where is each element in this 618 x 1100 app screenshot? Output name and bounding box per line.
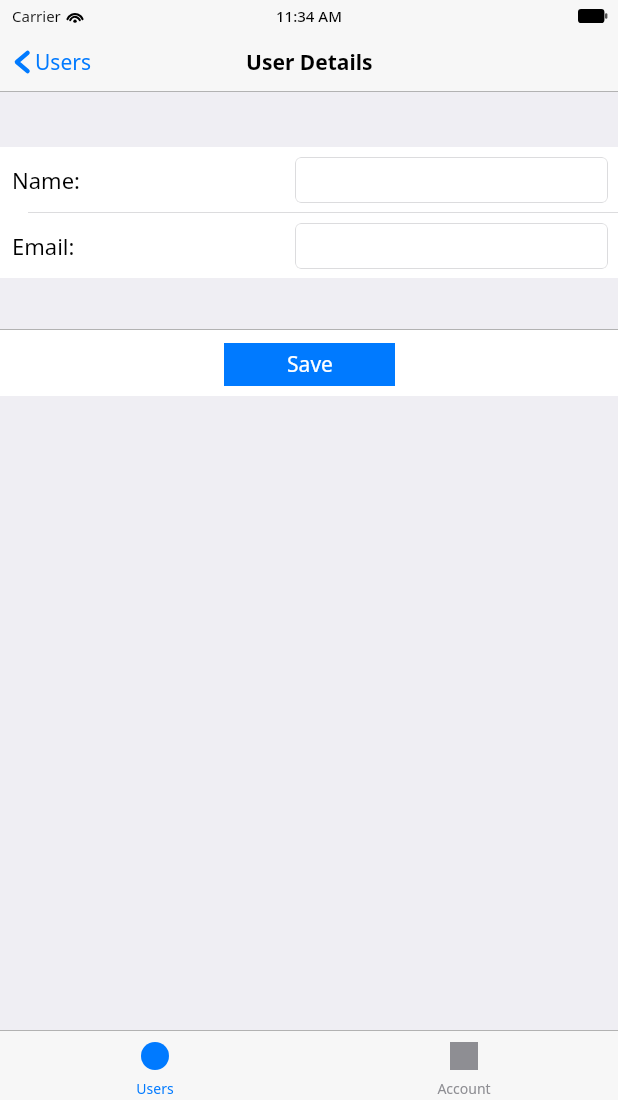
- staticText: Account: [437, 1079, 491, 1098]
- staticText: Users: [35, 48, 91, 77]
- staticText: User Details: [246, 48, 373, 77]
- button[interactable]: Users: [0, 32, 101, 92]
- button[interactable]: Account: [309, 1030, 618, 1100]
- staticText: Name:: [12, 165, 80, 195]
- staticText: Users: [136, 1079, 174, 1098]
- button[interactable]: Save: [224, 343, 395, 386]
- staticText: Email:: [12, 231, 75, 261]
- button[interactable]: Email:: [0, 213, 618, 278]
- staticText: Carrier: [12, 6, 61, 26]
- staticText: 11:34 AM: [276, 6, 342, 26]
- staticText: Save: [287, 350, 333, 379]
- button[interactable]: Users: [0, 1030, 309, 1100]
- button[interactable]: Name:: [0, 147, 618, 212]
